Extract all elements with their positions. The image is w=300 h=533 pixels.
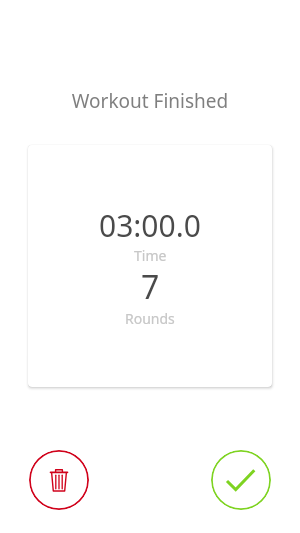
staticText: Rounds [125, 309, 175, 328]
staticText: Time [134, 246, 167, 265]
staticText: Workout Finished [0, 88, 300, 114]
button[interactable]: Confirm workout [211, 450, 271, 510]
staticText: 03:00.0 [99, 205, 201, 246]
staticText: 7 [141, 265, 160, 309]
button[interactable]: Delete workout [29, 450, 89, 510]
